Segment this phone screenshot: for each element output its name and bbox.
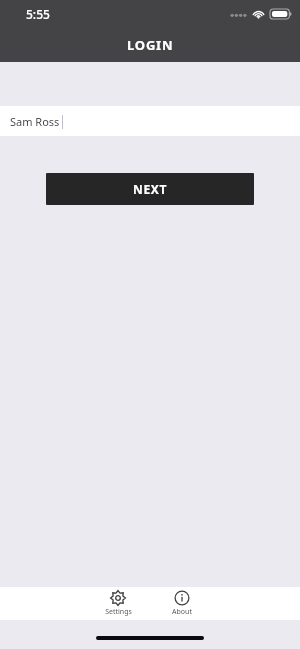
staticText: About (172, 607, 192, 617)
staticText: NEXT (133, 181, 167, 197)
staticText: Sam Ross (10, 114, 60, 129)
button[interactable]: NEXT (46, 173, 254, 205)
staticText: 5:55 (26, 6, 50, 22)
button[interactable]: Settings (94, 587, 142, 620)
staticText: Settings (105, 607, 132, 617)
staticText: LOGIN (127, 36, 174, 54)
button[interactable]: About (158, 587, 206, 620)
button[interactable]: Sam Ross (0, 106, 300, 136)
